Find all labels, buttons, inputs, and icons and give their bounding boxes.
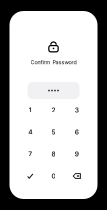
button[interactable]: 1 bbox=[18, 99, 42, 121]
button[interactable]: 0 bbox=[42, 165, 65, 187]
staticText: 2 bbox=[51, 106, 55, 114]
staticText: 3 bbox=[75, 106, 79, 114]
staticText: 7 bbox=[28, 150, 32, 158]
staticText: 0 bbox=[51, 172, 55, 180]
button[interactable]: 5 bbox=[42, 121, 65, 143]
button[interactable]: 6 bbox=[65, 121, 88, 143]
button[interactable]: 8 bbox=[42, 143, 65, 165]
button[interactable]: 7 bbox=[18, 143, 42, 165]
button[interactable]: Confirm bbox=[18, 165, 42, 187]
button[interactable]: Delete bbox=[65, 165, 88, 187]
button[interactable]: 4 bbox=[18, 121, 42, 143]
staticText: 1 bbox=[29, 106, 32, 114]
button[interactable]: 9 bbox=[65, 143, 88, 165]
button[interactable]: 2 bbox=[42, 99, 65, 121]
staticText: 9 bbox=[75, 150, 79, 158]
staticText: 5 bbox=[51, 128, 55, 136]
staticText: Confirm Password bbox=[30, 59, 76, 66]
staticText: 8 bbox=[51, 150, 55, 158]
staticText: 4 bbox=[28, 128, 32, 136]
staticText: 6 bbox=[75, 128, 79, 136]
button[interactable]: 3 bbox=[65, 99, 88, 121]
